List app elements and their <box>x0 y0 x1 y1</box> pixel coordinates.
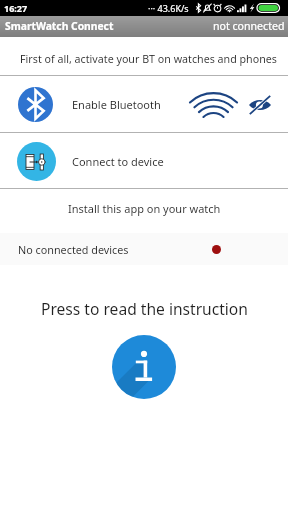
button[interactable]: No connected devices <box>0 233 288 265</box>
button[interactable]: Read the instruction <box>112 335 176 399</box>
staticText: Connect to device <box>72 154 164 169</box>
staticText: First of all, activate your BT on watche… <box>20 52 277 67</box>
button[interactable]: Visibility off <box>240 82 280 128</box>
staticText: ··· 43.6K/s <box>148 2 189 14</box>
staticText: 16:27 <box>4 2 28 14</box>
staticText: Press to read the instruction <box>41 298 248 319</box>
button[interactable]: Wi-Fi <box>188 82 240 128</box>
button[interactable]: Enable Bluetooth <box>0 76 288 133</box>
staticText: SmartWatch Connect <box>5 19 114 33</box>
staticText: Enable Bluetooth <box>72 97 161 112</box>
button[interactable]: Connect to device <box>0 133 288 189</box>
staticText: No connected devices <box>18 242 129 257</box>
staticText: Install this app on your watch <box>68 201 221 216</box>
staticText: not connected <box>213 19 285 33</box>
